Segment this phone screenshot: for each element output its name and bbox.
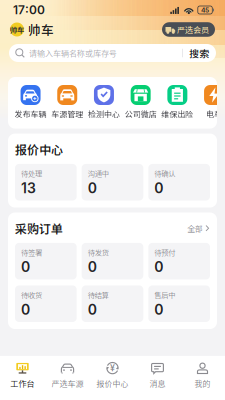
button[interactable]: 售后中 [148, 285, 210, 322]
staticText: 报价中心 [96, 377, 128, 389]
staticText: 0 [154, 258, 163, 275]
button[interactable]: 我的 [180, 361, 225, 389]
staticText: 车源管理 [51, 108, 83, 120]
button[interactable]: 公司微店 [124, 85, 157, 120]
staticText: 维保出险 [161, 108, 193, 120]
staticText: 0 [88, 301, 97, 318]
button[interactable]: 待签署 [15, 243, 77, 279]
button[interactable]: 严选会员 [162, 22, 215, 37]
staticText: 售后中 [154, 289, 175, 300]
staticText: 0 [154, 301, 163, 318]
button[interactable]: 发布车辆 [14, 85, 47, 120]
staticText: 请输入车辆名称或库存号 [29, 47, 117, 59]
button[interactable]: 检测中心 [87, 85, 120, 120]
staticText: 工作台 [10, 377, 34, 389]
staticText: 待签署 [21, 247, 42, 257]
button[interactable]: 待结算 [82, 285, 143, 322]
staticText: 待结算 [88, 289, 109, 300]
staticText: 检测中心 [88, 108, 120, 120]
staticText: 0 [88, 258, 97, 275]
staticText: 搜索 [189, 46, 209, 60]
button[interactable]: 沟通中 [82, 164, 143, 201]
button[interactable]: 维保出险 [161, 85, 194, 120]
staticText: 消息 [149, 377, 165, 389]
button[interactable]: 待发货 [82, 243, 143, 279]
staticText: 13 [21, 180, 36, 196]
button[interactable]: 待收货 [15, 285, 77, 322]
button[interactable]: 工作台 [0, 361, 45, 389]
staticText: 严选车源 [51, 377, 83, 389]
staticText: 全部 [187, 222, 203, 234]
staticText: ¥ [110, 363, 115, 373]
staticText: 0 [21, 301, 30, 318]
staticText: 采购订单 [15, 219, 63, 237]
staticText: 报价中心 [15, 141, 63, 158]
staticText: 待预付 [154, 247, 175, 257]
staticText: 电车 [206, 108, 222, 120]
staticText: 0 [154, 180, 163, 196]
staticText: 45 [201, 6, 209, 14]
button[interactable]: 车源管理 [51, 85, 84, 120]
staticText: 发布车辆 [15, 108, 47, 120]
button[interactable]: 待确认 [148, 164, 210, 201]
button[interactable]: 待预付 [148, 243, 210, 279]
staticText: 0 [21, 258, 30, 275]
button[interactable]: 消息 [135, 361, 180, 389]
staticText: 17:00 [13, 3, 45, 17]
staticText: 我的 [194, 377, 210, 389]
staticText: 0 [88, 180, 97, 196]
staticText: 待发货 [88, 247, 109, 257]
staticText: 待确认 [154, 168, 175, 179]
staticText: 帅车 [28, 20, 54, 39]
button[interactable]: 电车 [197, 85, 225, 120]
staticText: 待处理 [21, 168, 42, 179]
button[interactable]: ¥ [90, 361, 135, 389]
button[interactable]: 全部 [187, 222, 210, 234]
button[interactable]: 请输入车辆名称或库存号 [9, 44, 216, 62]
staticText: 帅车 [10, 24, 24, 35]
staticText: 严选会员 [177, 24, 209, 35]
button[interactable]: 待处理 [15, 164, 77, 201]
staticText: 沟通中 [88, 168, 109, 179]
button[interactable]: 严选车源 [45, 361, 90, 389]
staticText: 待收货 [21, 289, 42, 300]
staticText: 公司微店 [125, 108, 157, 120]
